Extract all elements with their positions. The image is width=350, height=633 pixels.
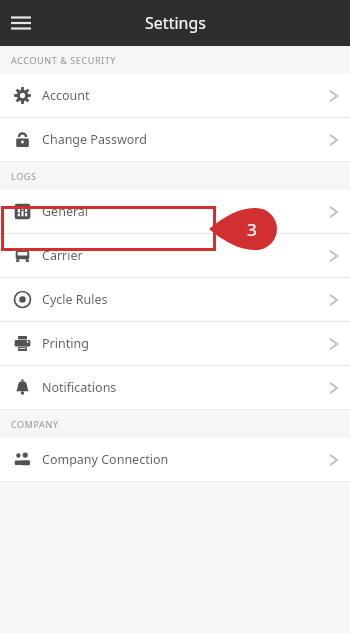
staticText: Notifications: [42, 379, 117, 396]
button[interactable]: Company Connection: [0, 438, 350, 481]
button[interactable]: Cycle Rules: [0, 278, 350, 321]
staticText: Settings: [145, 12, 206, 34]
staticText: Company Connection: [42, 451, 169, 468]
staticText: General: [42, 203, 89, 220]
staticText: Account: [42, 87, 90, 104]
staticText: Change Password: [42, 131, 147, 148]
staticText: 3: [247, 218, 257, 241]
button[interactable]: Printing: [0, 322, 350, 365]
button[interactable]: Notifications: [0, 366, 350, 409]
button[interactable]: General: [0, 190, 350, 233]
staticText: Cycle Rules: [42, 291, 108, 308]
button[interactable]: Carrier: [0, 234, 350, 277]
staticText: Carrier: [42, 247, 83, 264]
button[interactable]: Open navigation menu: [4, 6, 38, 40]
staticText: COMPANY: [11, 418, 59, 430]
staticText: LOGS: [11, 170, 37, 182]
button[interactable]: Account: [0, 74, 350, 117]
button[interactable]: Change Password: [0, 118, 350, 161]
staticText: Printing: [42, 335, 89, 352]
staticText: ACCOUNT & SECURITY: [11, 54, 117, 66]
